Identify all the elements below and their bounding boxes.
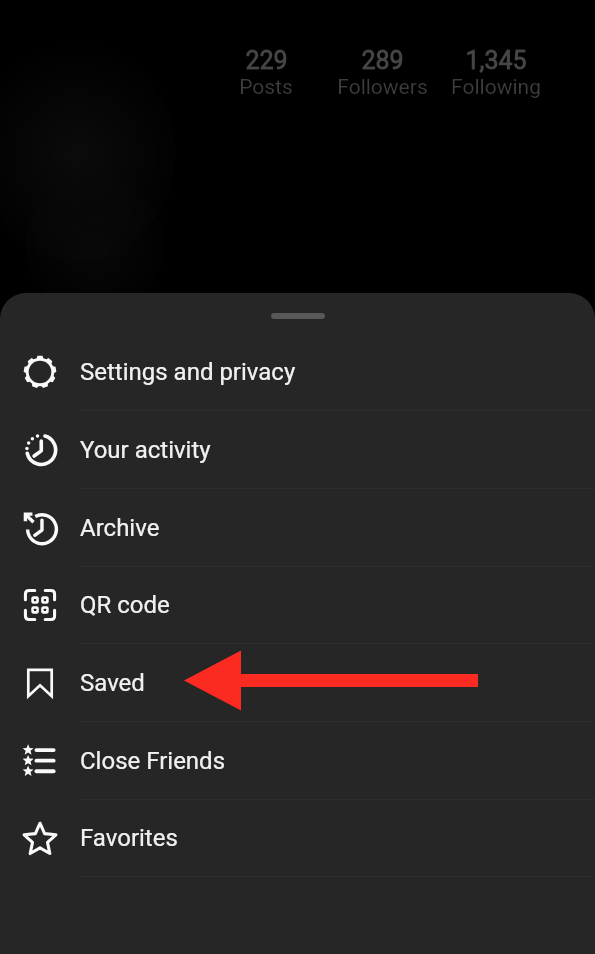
staticText: Archive (80, 514, 160, 542)
staticText: 229 (245, 46, 288, 75)
button[interactable]: QR code (0, 566, 595, 644)
button[interactable]: Favorites (0, 799, 595, 877)
button[interactable]: 1,345 (416, 46, 576, 100)
staticText: 289 (361, 46, 404, 75)
button[interactable]: Settings and privacy (0, 333, 595, 411)
staticText: Posts (239, 75, 293, 100)
staticText: 1,345 (465, 46, 527, 75)
staticText: Your activity (80, 436, 211, 464)
staticText: QR code (80, 591, 170, 619)
button[interactable]: Saved (0, 644, 595, 722)
button[interactable]: Close Friends (0, 722, 595, 800)
button[interactable]: Your activity (0, 411, 595, 489)
button[interactable]: 289 (302, 46, 462, 100)
staticText: Followers (337, 75, 428, 100)
staticText: Close Friends (80, 747, 226, 775)
staticText: Following (451, 75, 541, 100)
staticText: Settings and privacy (80, 358, 296, 386)
button[interactable]: 229 (186, 46, 346, 100)
button[interactable]: Archive (0, 489, 595, 567)
staticText: Favorites (80, 824, 178, 852)
staticText: Saved (80, 669, 145, 697)
button[interactable]: Drag handle (250, 301, 346, 327)
